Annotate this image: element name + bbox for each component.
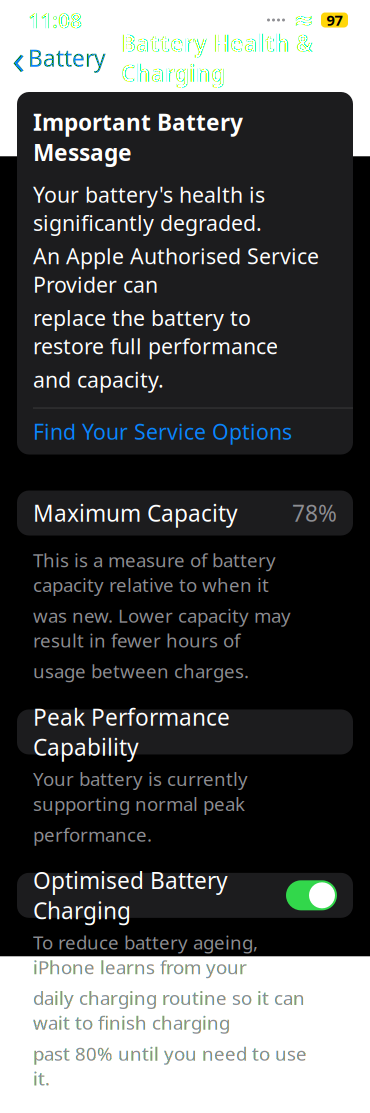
staticText: 97 bbox=[326, 10, 342, 30]
staticText: Peak Performance Capability bbox=[33, 702, 230, 762]
staticText: past 80% until you need to use it. bbox=[33, 1041, 307, 1091]
staticText: 11:08 bbox=[28, 6, 82, 34]
staticText: replace the battery to restore full perf… bbox=[33, 303, 278, 360]
staticText: performance. bbox=[33, 822, 152, 847]
staticText: daily charging routine so it can wait to… bbox=[33, 985, 305, 1035]
staticText: Battery Health & Charging bbox=[121, 28, 313, 88]
button[interactable]: ‹ bbox=[4, 41, 114, 75]
staticText: Battery bbox=[28, 43, 106, 73]
staticText: Important Battery Message bbox=[33, 107, 243, 167]
staticText: ≈ bbox=[293, 6, 314, 34]
staticText: Optimised Battery Charging bbox=[33, 865, 228, 925]
staticText: An Apple Authorised Service Provider can bbox=[33, 242, 319, 299]
staticText: Your battery is currently supporting nor… bbox=[33, 766, 248, 816]
staticText: To reduce battery ageing, iPhone learns … bbox=[33, 930, 258, 979]
staticText: usage between charges. bbox=[33, 659, 249, 683]
staticText: 78% bbox=[292, 498, 337, 528]
staticText: was new. Lower capacity may result in fe… bbox=[33, 603, 291, 653]
staticText: Maximum Capacity bbox=[33, 498, 238, 528]
button[interactable]: Optimised Battery Charging bbox=[17, 873, 353, 918]
staticText: This is a measure of battery capacity re… bbox=[33, 547, 276, 597]
button[interactable]: Find Your Service Options bbox=[17, 408, 353, 454]
button[interactable]: Peak Performance Capability bbox=[17, 709, 353, 754]
button[interactable]: Maximum Capacity bbox=[17, 490, 353, 535]
staticText: Find Your Service Options bbox=[33, 417, 292, 446]
staticText: ‹ bbox=[12, 30, 25, 86]
staticText: and capacity. bbox=[33, 365, 164, 393]
staticText: Your battery's health is significantly d… bbox=[33, 180, 265, 237]
